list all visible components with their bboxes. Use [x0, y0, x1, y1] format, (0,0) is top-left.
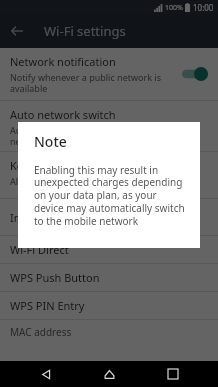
staticText: Network notification [10, 54, 116, 69]
button[interactable]: Auto network switch [0, 101, 218, 151]
staticText: MAC address [10, 325, 72, 339]
button[interactable]: Keep Wi-Fi on during sleep [0, 152, 218, 198]
staticText: Wi-Fi settings [44, 22, 126, 40]
staticText: Wi-Fi Direct [10, 242, 69, 257]
staticText: 100% [165, 3, 183, 13]
staticText: WPS Push Button [10, 270, 100, 285]
staticText: Install certificates [10, 210, 101, 225]
button[interactable]: Home [91, 361, 127, 387]
staticText: Automatically switch to the best network [10, 124, 145, 147]
button[interactable]: Back [28, 361, 64, 387]
staticText: Keep Wi-Fi on during sleep [10, 158, 148, 173]
staticText: Auto network switch [10, 107, 116, 122]
staticText: Enabling this may result in unexpected c… [34, 163, 188, 228]
button[interactable]: WPS Push Button [0, 264, 218, 291]
button[interactable]: Recent apps [155, 361, 191, 387]
button[interactable]: MAC address [0, 320, 218, 350]
button[interactable]: Back [0, 14, 34, 48]
staticText: Always [10, 175, 40, 187]
button[interactable]: WPS PIN Entry [0, 292, 218, 319]
button[interactable]: Wi-Fi Direct [0, 236, 218, 263]
button[interactable]: Install certificates [0, 199, 218, 235]
staticText: WPS PIN Entry [10, 298, 85, 313]
staticText: Notify whenever a public network is avai… [10, 71, 161, 94]
staticText: Note [34, 132, 67, 151]
button[interactable]: Network notification [0, 48, 218, 100]
staticText: 10:00 [193, 2, 214, 13]
